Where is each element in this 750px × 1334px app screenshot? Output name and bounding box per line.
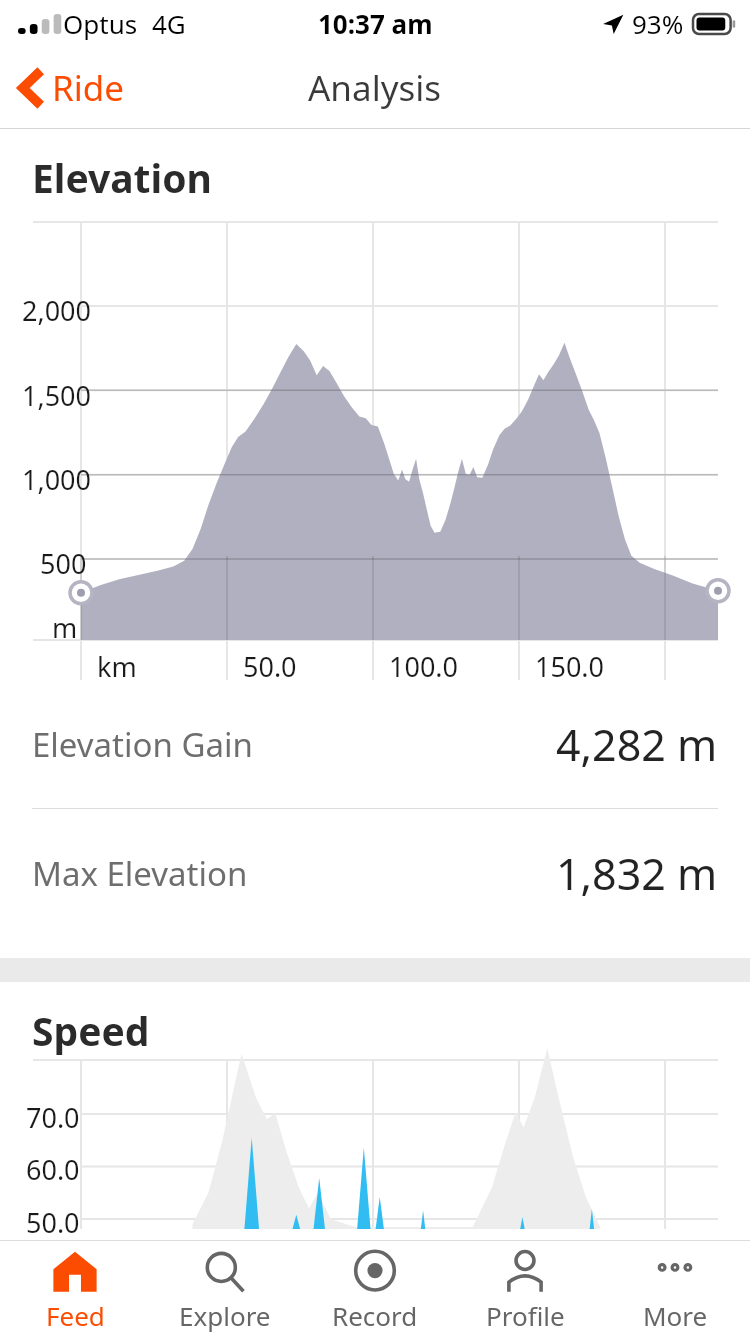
staticText: 50.0 — [26, 1204, 80, 1241]
staticText: 150.0 — [535, 648, 605, 685]
staticText: 2,000 — [22, 292, 92, 329]
other: Profile — [502, 1249, 548, 1295]
button[interactable]: Ride — [12, 56, 133, 120]
staticText: 4,282 m — [556, 715, 718, 774]
staticText: 70.0 — [26, 1099, 80, 1136]
button[interactable]: Max Elevation — [0, 809, 750, 937]
staticText: 500 — [40, 545, 87, 582]
staticText: 10:37 am — [318, 6, 433, 41]
button[interactable]: Elevation Gain — [0, 680, 750, 808]
staticText: 1,000 — [22, 461, 92, 498]
staticText: m — [52, 609, 78, 646]
button[interactable]: Explore — [150, 1240, 300, 1334]
button[interactable]: Record — [300, 1240, 450, 1334]
staticText: 100.0 — [389, 648, 459, 685]
staticText: Speed — [32, 1004, 150, 1057]
staticText: Feed — [46, 1298, 105, 1333]
staticText: 1,500 — [22, 377, 92, 414]
staticText: 60.0 — [26, 1151, 80, 1188]
staticText: 50.0 — [243, 648, 297, 685]
staticText: 93% — [632, 6, 684, 41]
staticText: km — [97, 648, 137, 685]
button[interactable]: Profile — [450, 1240, 600, 1334]
staticText: 1,832 m — [556, 844, 718, 903]
other: More — [652, 1249, 698, 1295]
staticText: 4G — [152, 6, 186, 41]
staticText: Profile — [486, 1298, 565, 1333]
staticText: Analysis — [308, 64, 442, 112]
staticText: Optus — [63, 6, 138, 41]
button[interactable]: More — [600, 1240, 750, 1334]
staticText: Record — [332, 1298, 418, 1333]
staticText: Elevation — [32, 151, 212, 204]
button[interactable]: Feed — [0, 1240, 150, 1334]
staticText: Max Elevation — [32, 851, 248, 896]
other: Record — [352, 1249, 398, 1295]
staticText: More — [643, 1298, 708, 1333]
staticText: Explore — [179, 1298, 271, 1333]
staticText: Ride — [52, 64, 125, 112]
other: Explore — [202, 1249, 248, 1295]
other: Feed — [52, 1249, 98, 1295]
staticText: Elevation Gain — [32, 722, 253, 767]
